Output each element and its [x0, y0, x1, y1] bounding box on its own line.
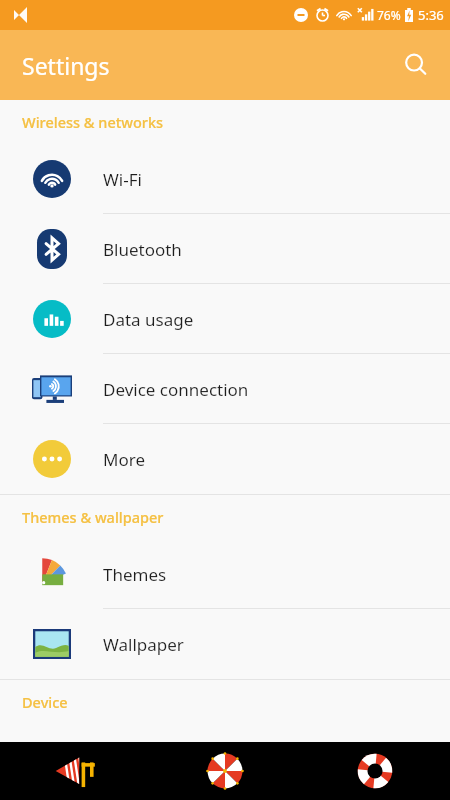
button[interactable]: Themes	[0, 539, 450, 609]
staticText: More	[103, 448, 145, 471]
staticText: Themes & wallpaper	[22, 507, 164, 527]
staticText: Device connection	[103, 378, 249, 401]
button[interactable]: Wi-Fi	[0, 144, 450, 214]
staticText: Settings	[22, 50, 110, 81]
button[interactable]: Back	[0, 742, 150, 800]
button[interactable]: Home	[150, 742, 300, 800]
staticText: 5:36	[418, 6, 444, 24]
button[interactable]: Recent apps	[300, 742, 450, 800]
button[interactable]: Device connection	[0, 354, 450, 424]
staticText: Wallpaper	[103, 633, 184, 656]
staticText: Data usage	[103, 308, 194, 331]
staticText: Device	[22, 692, 68, 712]
staticText: Bluetooth	[103, 238, 182, 261]
staticText: Themes	[103, 563, 167, 586]
button[interactable]: Data usage	[0, 284, 450, 354]
staticText: Wireless & networks	[22, 112, 164, 132]
button[interactable]: Wallpaper	[0, 609, 450, 679]
staticText: Wi-Fi	[103, 168, 142, 191]
button[interactable]: More	[0, 424, 450, 494]
staticText: 76%	[377, 7, 401, 23]
button[interactable]: Search	[392, 41, 440, 89]
button[interactable]: Bluetooth	[0, 214, 450, 284]
